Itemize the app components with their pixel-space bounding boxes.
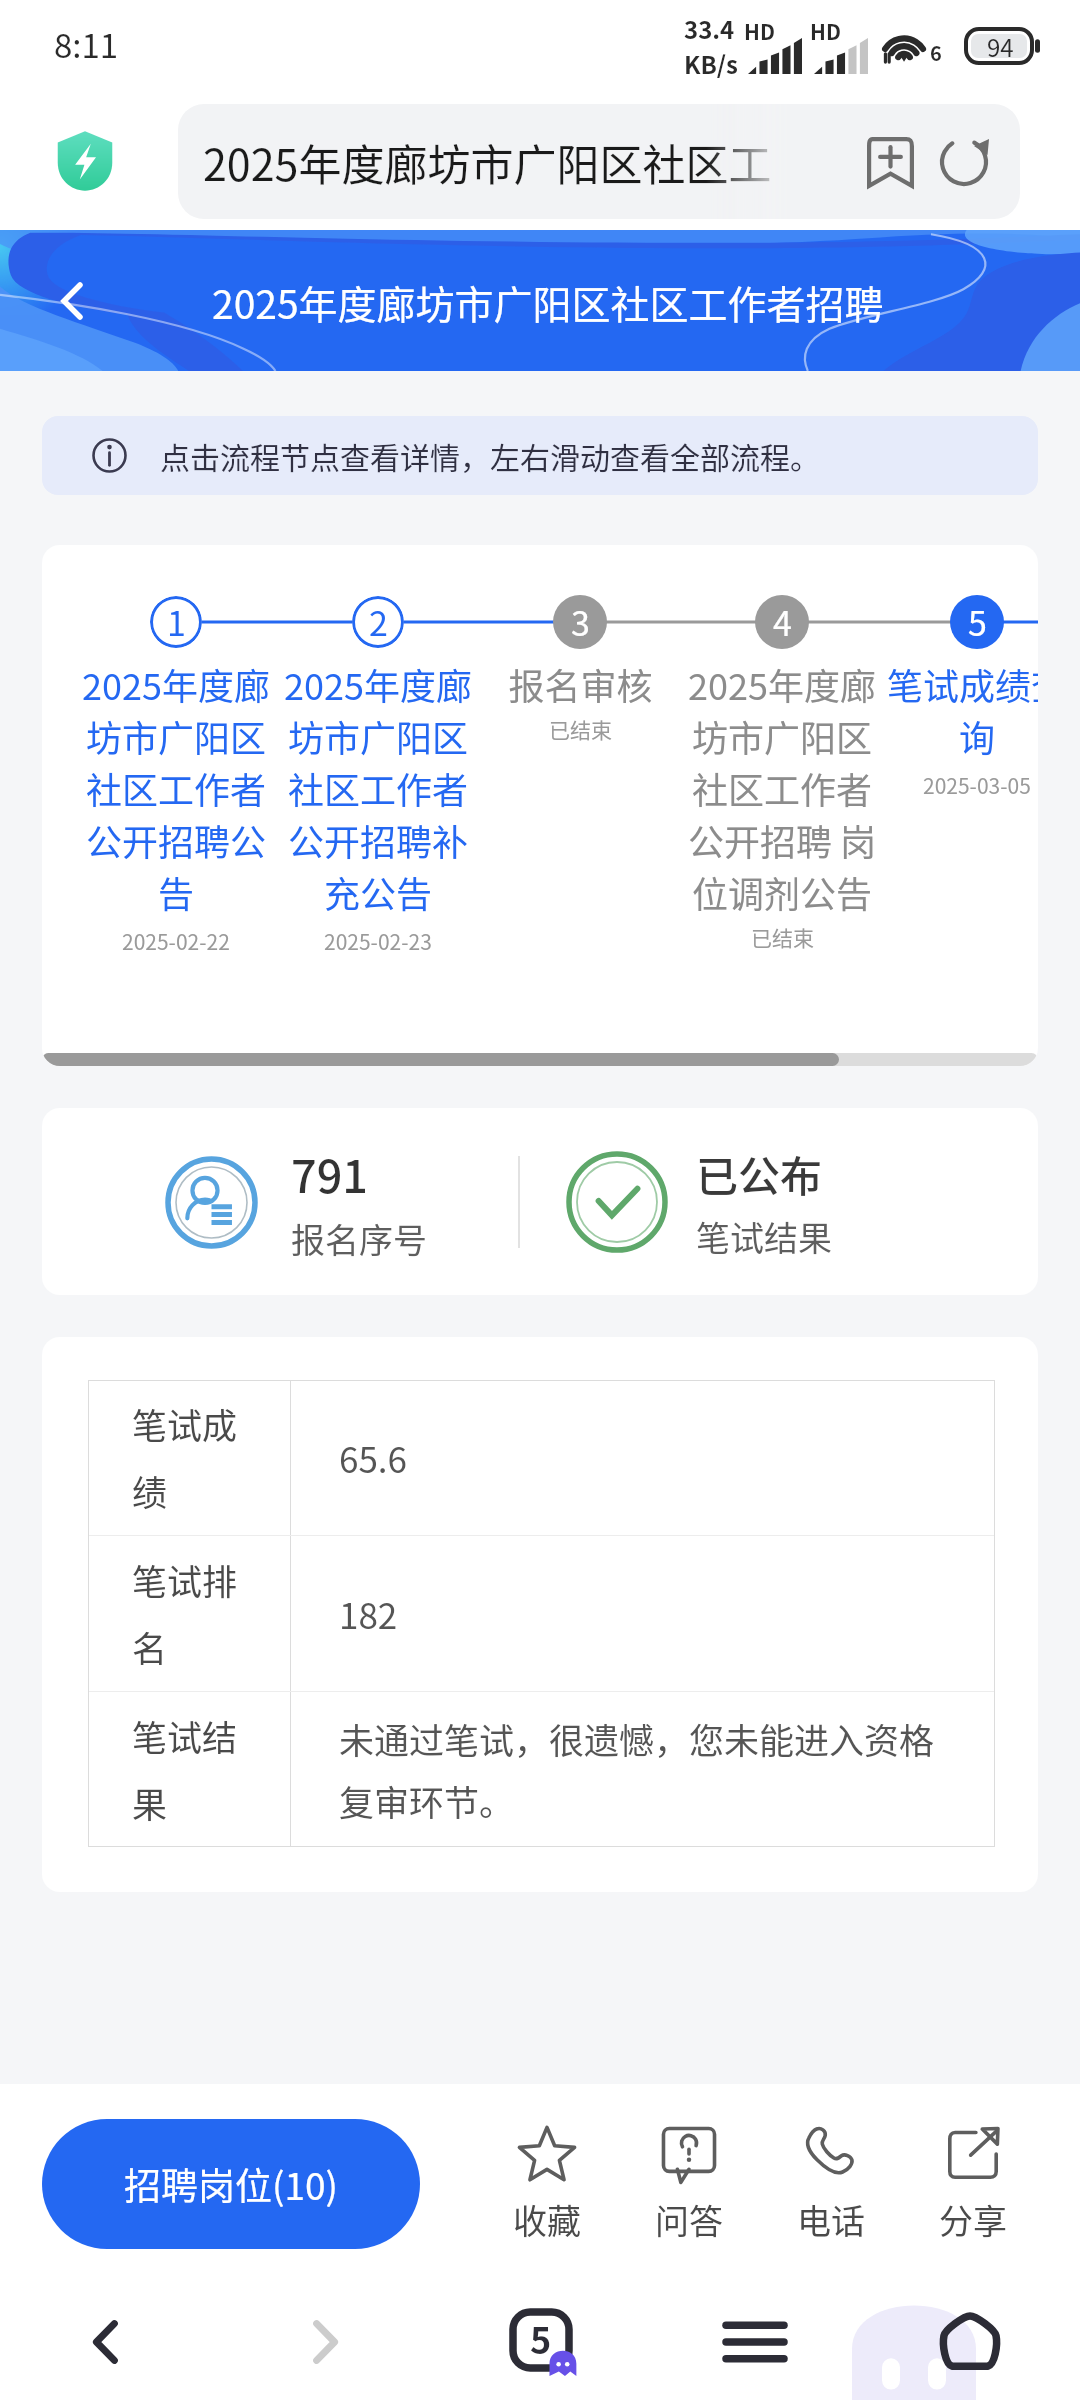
staticText: 791 — [291, 1141, 368, 1206]
button[interactable]: 招聘岗位(10) — [42, 2119, 420, 2249]
staticText: 收藏 — [513, 2195, 581, 2244]
staticText: 分享 — [939, 2195, 1007, 2244]
staticText: 3 — [571, 597, 590, 646]
button[interactable]: 电话 — [760, 2125, 902, 2244]
button[interactable]: 2 — [352, 596, 404, 648]
button[interactable]: Refresh — [918, 116, 1010, 208]
staticText: 点击流程节点查看详情，左右滑动查看全部流程。 — [160, 434, 820, 477]
staticText: 33.4 — [684, 11, 735, 46]
staticText: 65.6 — [339, 1432, 408, 1483]
staticText: 2025年度廊坊市广阳区社区工作者招聘 — [212, 274, 884, 330]
button[interactable]: 已公布 — [566, 1143, 832, 1261]
staticText: 已结束 — [751, 922, 814, 952]
button[interactable]: 3 — [553, 595, 607, 649]
staticText: 1 — [167, 597, 186, 646]
staticText: 2025年度廊坊市广阳区社区工作者公开招聘 岗位调剂公告 — [683, 658, 881, 918]
button[interactable]: 4 — [755, 595, 809, 649]
staticText: HD — [744, 16, 775, 46]
button[interactable]: Home — [922, 2294, 1018, 2390]
staticText: 已公布 — [696, 1143, 823, 1204]
button[interactable]: Tabs — [497, 2294, 593, 2390]
button[interactable]: 791 — [165, 1141, 427, 1263]
staticText: 2025-02-23 — [324, 926, 432, 956]
staticText: 2025-02-22 — [122, 926, 230, 956]
button[interactable]: Forward — [276, 2294, 372, 2390]
staticText: 笔试结果 — [696, 1212, 832, 1261]
staticText: 招聘岗位(10) — [124, 2157, 339, 2211]
staticText: 5 — [530, 2312, 552, 2364]
button[interactable]: 分享 — [902, 2125, 1044, 2244]
staticText: 6 — [930, 38, 942, 67]
button[interactable]: 收藏 — [476, 2125, 618, 2244]
staticText: 报名序号 — [291, 1214, 427, 1263]
staticText: 2025年度廊坊市广阳区社区工作者招聘公告 — [203, 131, 792, 193]
staticText: 电话 — [797, 2195, 865, 2244]
staticText: 4 — [773, 597, 792, 646]
staticText: 笔试成绩查询 — [885, 658, 1038, 762]
staticText: 2025-03-05 — [923, 770, 1031, 800]
button[interactable]: Back — [32, 261, 112, 341]
button[interactable]: 1 — [150, 596, 202, 648]
staticText: 2025年度廊坊市广阳区社区工作者公开招聘补充公告 — [279, 658, 477, 918]
button[interactable]: Security — [45, 121, 125, 201]
staticText: HD — [810, 16, 841, 46]
button[interactable]: Back — [59, 2294, 155, 2390]
staticText: 94 — [987, 29, 1014, 64]
button[interactable]: 5 — [950, 595, 1004, 649]
button[interactable]: 点击流程节点查看详情，左右滑动查看全部流程。 — [42, 416, 1038, 495]
staticText: 笔试排名 — [132, 1554, 242, 1673]
staticText: 已结束 — [549, 714, 612, 744]
button[interactable]: 2025年度廊坊市广阳区社区工作者招聘公告 — [178, 104, 1020, 219]
staticText: 2025年度廊坊市广阳区社区工作者公开招聘公告 — [77, 658, 275, 918]
staticText: 2 — [369, 597, 388, 646]
staticText: 未通过笔试，很遗憾，您未能进入资格复审环节。 — [339, 1713, 939, 1826]
staticText: 笔试结果 — [132, 1710, 242, 1829]
button[interactable]: Add bookmark — [844, 116, 936, 208]
staticText: 报名审核 — [508, 658, 653, 710]
staticText: KB/s — [684, 46, 738, 81]
staticText: 问答 — [655, 2195, 723, 2244]
staticText: 8:11 — [54, 20, 119, 68]
staticText: 笔试成绩 — [132, 1398, 242, 1517]
button[interactable]: 问答 — [618, 2125, 760, 2244]
staticText: 182 — [339, 1588, 398, 1639]
button[interactable]: Menu — [707, 2294, 803, 2390]
staticText: 5 — [968, 597, 987, 646]
